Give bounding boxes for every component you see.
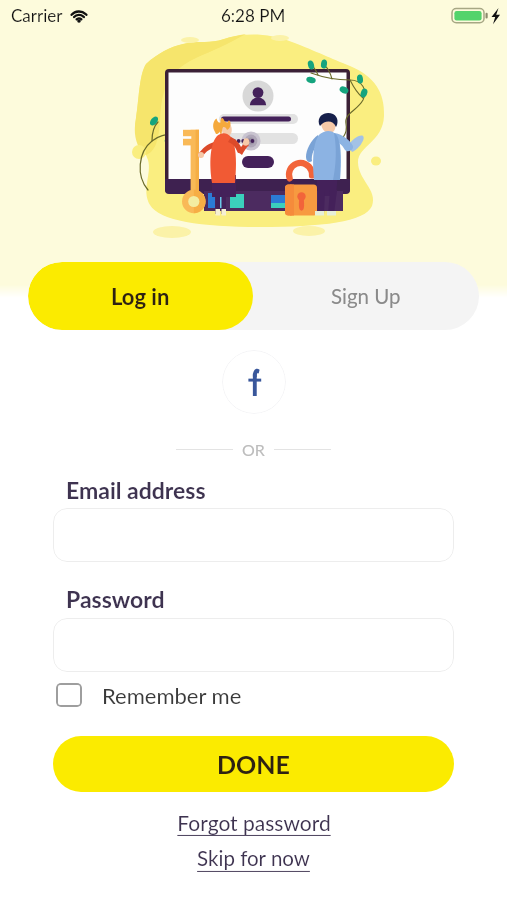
staticText: 6:28 PM: [221, 5, 286, 25]
button[interactable]: [53, 508, 454, 562]
button[interactable]: [53, 618, 454, 672]
staticText: Log in: [111, 283, 170, 309]
staticText: Carrier: [11, 5, 63, 25]
button[interactable]: Log in: [28, 262, 253, 330]
button[interactable]: Sign in with Facebook: [222, 350, 286, 414]
button[interactable]: Forgot password: [177, 810, 331, 835]
button[interactable]: Sign Up: [253, 262, 479, 330]
staticText: Sign Up: [331, 284, 401, 309]
staticText: Password: [66, 585, 165, 613]
staticText: Remember me: [102, 682, 242, 708]
button[interactable]: DONE: [53, 736, 454, 792]
button[interactable]: Skip for now: [197, 846, 310, 871]
staticText: OR: [242, 440, 265, 459]
staticText: Email address: [66, 476, 206, 504]
button[interactable]: Remember me: [56, 682, 242, 708]
staticText: DONE: [217, 749, 290, 779]
